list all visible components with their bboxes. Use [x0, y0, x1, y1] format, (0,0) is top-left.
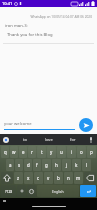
button[interactable]: Send — [79, 118, 93, 132]
staticText: o — [80, 149, 83, 155]
button[interactable] — [32, 206, 66, 207]
staticText: d — [27, 162, 30, 168]
button[interactable]: n — [64, 172, 73, 184]
staticText: v — [47, 175, 50, 181]
staticText: k — [75, 162, 78, 168]
staticText: m — [76, 175, 81, 181]
staticText: f — [36, 162, 38, 168]
staticText: ?123 — [5, 189, 13, 194]
button[interactable]: Settings — [17, 185, 26, 197]
staticText: r — [31, 149, 33, 155]
staticText: z — [17, 175, 20, 181]
button[interactable]: Enter — [80, 185, 96, 197]
staticText: iron man-3: — [5, 23, 28, 29]
button[interactable]: Google search — [0, 134, 12, 145]
button[interactable]: your welcome — [4, 121, 75, 130]
button[interactable]: d — [24, 159, 32, 171]
button[interactable]: Backspace — [84, 172, 96, 184]
button[interactable]: q — [1, 146, 9, 158]
button[interactable]: love — [37, 134, 61, 145]
button[interactable]: f — [33, 159, 41, 171]
staticText: j — [66, 162, 68, 168]
staticText: t — [41, 149, 43, 155]
staticText: w — [12, 149, 16, 155]
staticText: x — [27, 175, 30, 181]
staticText: a — [9, 162, 12, 168]
button[interactable]: r — [28, 146, 36, 158]
staticText: to — [23, 137, 27, 142]
button[interactable]: m — [74, 172, 83, 184]
staticText: n — [67, 175, 70, 181]
button[interactable]: x — [24, 172, 33, 184]
staticText: g — [45, 162, 48, 168]
button[interactable]: h — [52, 159, 61, 171]
staticText: l — [86, 162, 88, 168]
button[interactable]: ?123 — [1, 185, 16, 197]
staticText: for — [70, 137, 76, 142]
staticText: WhatsApp on 10/05/14 04:07 AM 06 2020 — [0, 15, 92, 19]
button[interactable]: l — [82, 159, 91, 171]
button[interactable]: z — [14, 172, 23, 184]
button[interactable]: t — [37, 146, 46, 158]
button[interactable]: o — [77, 146, 86, 158]
staticText: 10:41 — [2, 1, 13, 6]
staticText: English — [52, 189, 64, 194]
button[interactable]: y — [47, 146, 56, 158]
staticText: p — [90, 149, 93, 155]
staticText: i — [71, 149, 73, 155]
button[interactable]: Emoji — [27, 185, 36, 197]
button[interactable]: s — [15, 159, 23, 171]
button[interactable]: a — [6, 159, 14, 171]
staticText: e — [22, 149, 25, 155]
button[interactable]: English — [37, 185, 79, 197]
button[interactable]: u — [57, 146, 66, 158]
staticText: love — [45, 137, 53, 142]
staticText: q — [4, 149, 7, 155]
staticText: Thank you for this Blog — [7, 32, 53, 38]
staticText: b — [57, 175, 60, 181]
button[interactable]: b — [54, 172, 63, 184]
button[interactable]: for — [61, 134, 85, 145]
button[interactable]: i — [67, 146, 76, 158]
button[interactable]: c — [34, 172, 43, 184]
staticText: your welcome — [4, 121, 32, 127]
staticText: s — [18, 162, 21, 168]
button[interactable]: v — [44, 172, 53, 184]
button[interactable]: j — [62, 159, 71, 171]
button[interactable]: p — [87, 146, 96, 158]
button[interactable]: w — [10, 146, 18, 158]
button[interactable]: k — [72, 159, 81, 171]
button[interactable]: g — [42, 159, 51, 171]
button[interactable]: Shift — [1, 172, 13, 184]
staticText: h — [55, 162, 58, 168]
button[interactable]: to — [12, 134, 37, 145]
button[interactable]: Voice input — [85, 134, 97, 145]
staticText: u — [60, 149, 63, 155]
button[interactable]: e — [19, 146, 27, 158]
staticText: c — [37, 175, 40, 181]
staticText: y — [50, 149, 53, 155]
